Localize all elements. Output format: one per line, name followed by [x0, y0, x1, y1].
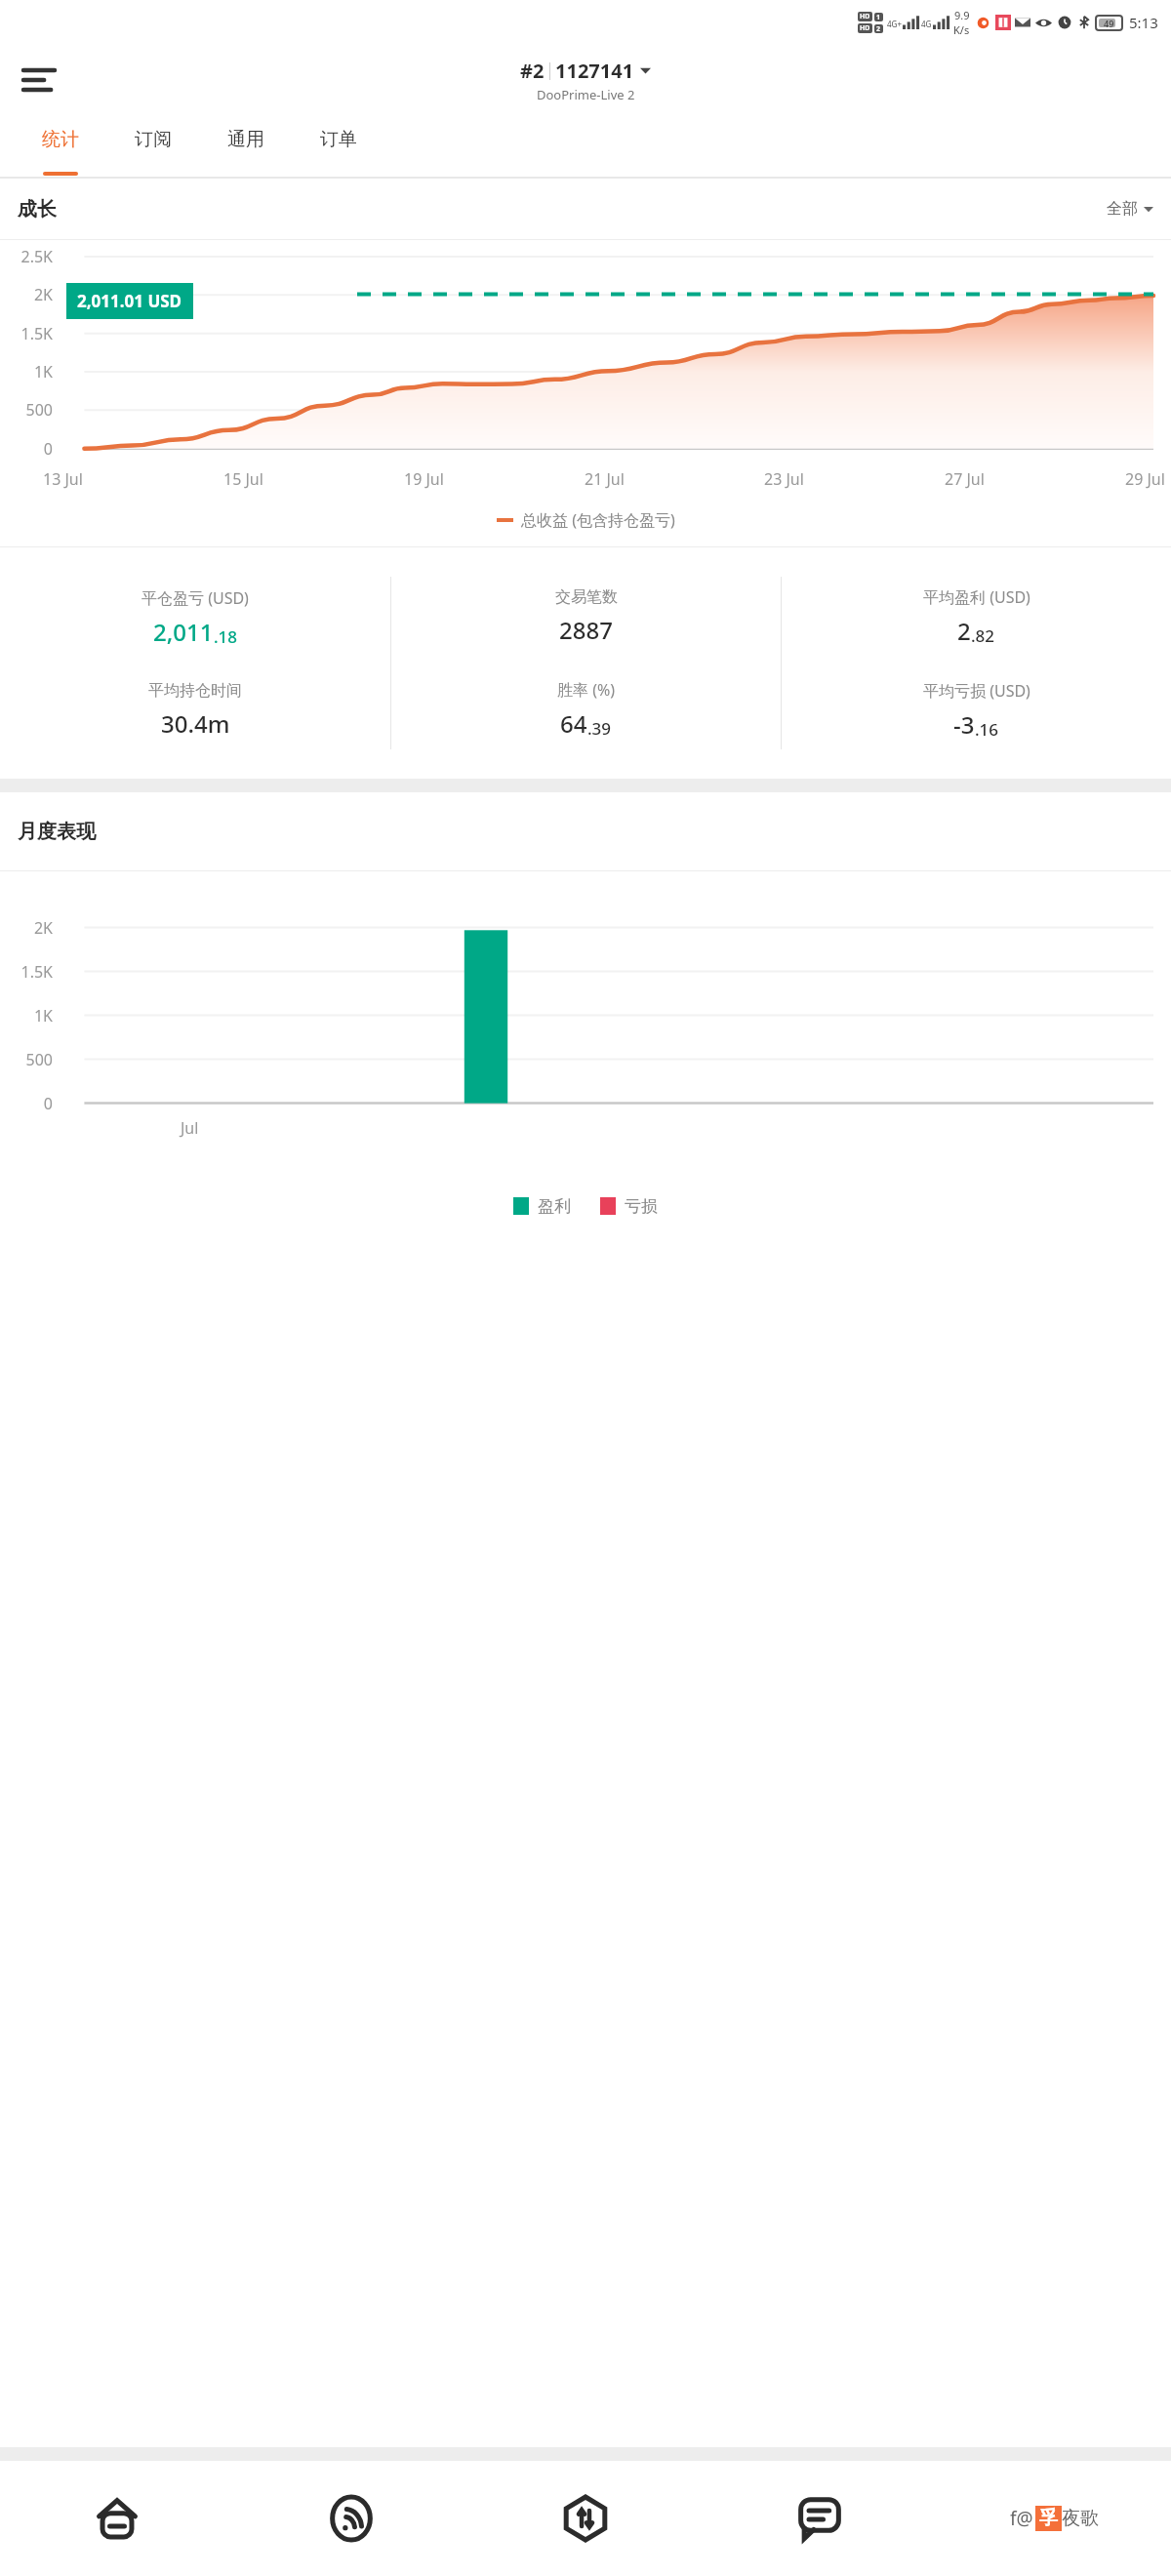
- staticText: 64: [560, 707, 587, 740]
- staticText: 1127141: [555, 58, 634, 84]
- button[interactable]: 平仓盈亏 (USD): [0, 547, 390, 779]
- staticText: .16: [975, 718, 999, 741]
- staticText: 平均盈利 (USD): [923, 586, 1030, 608]
- staticText: 通用: [227, 128, 264, 151]
- staticText: 29 Jul: [1125, 468, 1165, 490]
- button[interactable]: Trade: [468, 2461, 703, 2576]
- staticText: 胜率 (%): [557, 679, 616, 701]
- staticText: 交易笔数: [555, 587, 618, 607]
- staticText: 2: [957, 615, 971, 647]
- staticText: 4G+: [887, 19, 902, 29]
- staticText: DooPrime-Live 2: [537, 86, 635, 103]
- staticText: 19 Jul: [404, 468, 444, 490]
- button[interactable]: Messages: [703, 2461, 937, 2576]
- staticText: 27 Jul: [945, 468, 985, 490]
- staticText: 平均持仓时间: [148, 681, 242, 701]
- staticText: -3: [953, 708, 975, 741]
- staticText: 2: [876, 24, 881, 33]
- staticText: 0: [0, 1093, 53, 1114]
- staticText: .18: [214, 625, 238, 648]
- staticText: Jul: [181, 1117, 199, 1139]
- staticText: 统计: [42, 128, 79, 151]
- staticText: 2,011: [153, 616, 214, 648]
- staticText: 500: [0, 399, 53, 421]
- button[interactable]: Home: [0, 2461, 234, 2576]
- staticText: 1K: [0, 361, 53, 382]
- staticText: 孚: [1039, 2507, 1058, 2530]
- staticText: 成长: [18, 197, 57, 221]
- button[interactable]: Signals: [234, 2461, 468, 2576]
- staticText: 订阅: [135, 128, 172, 151]
- staticText: 夜歌: [1062, 2507, 1099, 2530]
- staticText: 全部: [1107, 199, 1138, 219]
- staticText: 1K: [0, 1005, 53, 1026]
- staticText: 月度表现: [18, 820, 96, 844]
- staticText: 2,011.01 USD: [77, 290, 182, 312]
- staticText: 1.5K: [0, 323, 53, 344]
- staticText: 9.9: [954, 8, 970, 22]
- staticText: 订单: [320, 128, 357, 151]
- staticText: 1.5K: [0, 961, 53, 983]
- staticText: 15 Jul: [223, 468, 263, 490]
- button[interactable]: 统计: [14, 116, 106, 177]
- staticText: HD: [860, 12, 870, 21]
- button[interactable]: 订单: [292, 116, 384, 177]
- staticText: 2K: [0, 917, 53, 939]
- button[interactable]: 平均盈利 (USD): [782, 547, 1171, 779]
- staticText: 49: [1104, 18, 1114, 29]
- button[interactable]: 通用: [199, 116, 292, 177]
- staticText: 5:13: [1129, 13, 1158, 32]
- staticText: 2887: [559, 614, 613, 646]
- staticText: .39: [587, 717, 612, 740]
- staticText: 23 Jul: [764, 468, 804, 490]
- staticText: 2K: [0, 284, 53, 305]
- staticText: 2.5K: [0, 246, 53, 267]
- staticText: 21 Jul: [585, 468, 625, 490]
- staticText: 亏损: [625, 1196, 658, 1217]
- staticText: 总收益 (包含持仓盈亏): [521, 509, 675, 531]
- staticText: 平均亏损 (USD): [923, 680, 1030, 702]
- button[interactable]: Menu: [12, 53, 66, 107]
- staticText: 30.4m: [161, 707, 230, 740]
- staticText: 13 Jul: [43, 468, 83, 490]
- button[interactable]: 全部: [1107, 199, 1153, 219]
- button[interactable]: #2: [520, 58, 651, 103]
- staticText: 4G: [921, 19, 932, 29]
- staticText: K/s: [953, 22, 970, 37]
- staticText: 平仓盈亏 (USD): [141, 587, 249, 609]
- button[interactable]: 订阅: [106, 116, 199, 177]
- staticText: #2: [520, 58, 545, 84]
- button[interactable]: 交易笔数: [391, 547, 781, 779]
- staticText: 盈利: [538, 1196, 571, 1217]
- staticText: 1: [876, 13, 881, 21]
- staticText: .82: [971, 624, 995, 647]
- staticText: HD: [860, 23, 870, 33]
- staticText: 0: [0, 438, 53, 460]
- staticText: 500: [0, 1049, 53, 1070]
- staticText: f@: [1010, 2506, 1033, 2531]
